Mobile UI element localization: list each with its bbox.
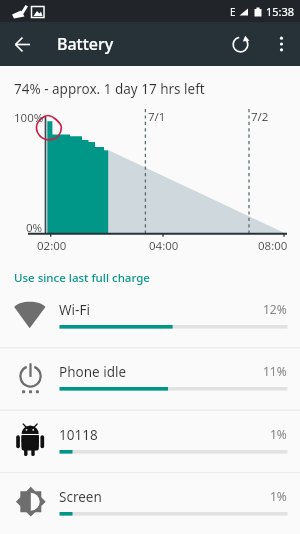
staticText: 100% (14, 110, 44, 126)
staticText: E (230, 5, 236, 19)
button[interactable]: Phone idle (0, 347, 300, 409)
button[interactable]: Wi-Fi (0, 285, 300, 347)
staticText: 74% - approx. 1 day 17 hrs left (14, 80, 205, 98)
staticText: Wi-Fi (59, 301, 90, 319)
button[interactable]: 10118 (0, 410, 300, 472)
staticText: 0% (26, 220, 43, 236)
button[interactable]: More options (262, 25, 300, 63)
staticText: Battery (57, 33, 114, 55)
staticText: 7/2 (251, 109, 269, 125)
staticText: 08:00 (258, 238, 288, 254)
button[interactable]: Navigate up (0, 22, 44, 66)
staticText: 7/1 (148, 109, 166, 125)
button[interactable]: Screen (0, 472, 300, 534)
staticText: Use since last full charge (14, 270, 150, 286)
staticText: Screen (59, 488, 102, 506)
staticText: 1% (270, 488, 287, 504)
staticText: 12% (263, 301, 287, 317)
staticText: 04:00 (149, 238, 179, 254)
staticText: Phone idle (59, 363, 127, 381)
staticText: 10118 (59, 426, 98, 444)
button[interactable]: Refresh (218, 22, 262, 66)
staticText: 15:38 (266, 4, 295, 19)
staticText: 11% (263, 363, 287, 379)
staticText: 1% (270, 426, 287, 442)
staticText: 02:00 (37, 238, 67, 254)
